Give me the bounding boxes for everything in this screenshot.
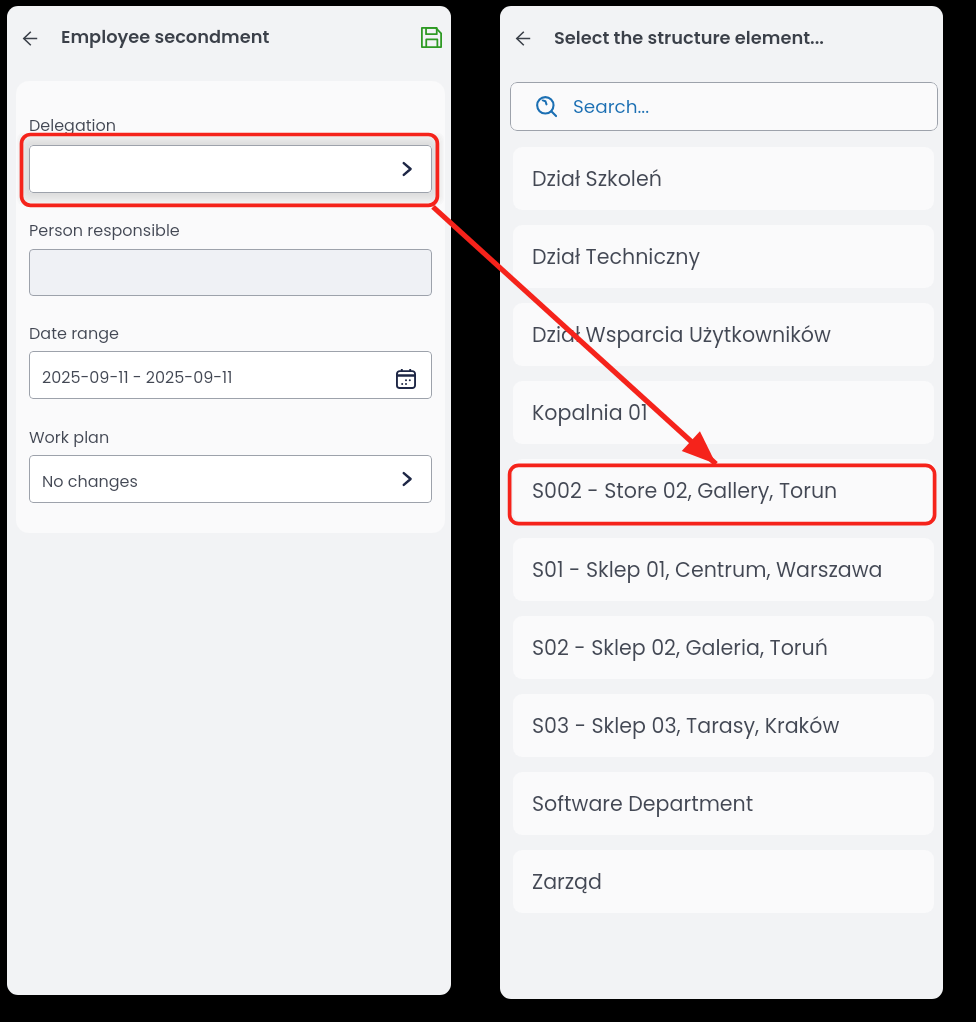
staticText: Kopalnia 01: [532, 398, 648, 427]
button[interactable]: 2025-09-11 - 2025-09-11: [29, 351, 432, 399]
staticText: Date range: [29, 322, 119, 344]
button[interactable]: S01 - Sklep 01, Centrum, Warszawa: [513, 538, 934, 601]
button[interactable]: Kopalnia 01: [513, 381, 934, 444]
button[interactable]: [29, 145, 432, 193]
button[interactable]: Dział Szkoleń: [513, 147, 934, 210]
staticText: Dział Wsparcia Użytkowników: [532, 320, 831, 349]
button[interactable]: No changes: [29, 455, 432, 503]
staticText: Person responsible: [29, 219, 180, 241]
staticText: Dział Szkoleń: [532, 164, 662, 193]
staticText: Software Department: [532, 789, 754, 818]
button[interactable]: Save: [411, 17, 451, 57]
staticText: Delegation: [29, 114, 116, 136]
button[interactable]: S03 - Sklep 03, Tarasy, Kraków: [513, 694, 934, 757]
button[interactable]: Zarząd: [513, 850, 934, 913]
button[interactable]: Back: [503, 18, 543, 58]
button[interactable]: Search...: [510, 82, 938, 131]
staticText: No changes: [42, 470, 138, 492]
staticText: 2025-09-11 - 2025-09-11: [42, 366, 233, 388]
staticText: Select the structure element...: [554, 25, 824, 50]
staticText: Dział Techniczny: [532, 242, 701, 271]
staticText: Work plan: [29, 426, 110, 448]
staticText: S01 - Sklep 01, Centrum, Warszawa: [532, 555, 883, 584]
staticText: Search...: [573, 94, 650, 120]
staticText: S02 - Sklep 02, Galeria, Toruń: [532, 633, 828, 662]
button[interactable]: Back: [10, 18, 50, 58]
button[interactable]: Dział Techniczny: [513, 225, 934, 288]
button[interactable]: Dział Wsparcia Użytkowników: [513, 303, 934, 366]
button[interactable]: S002 - Store 02, Gallery, Torun: [513, 459, 934, 522]
staticText: S002 - Store 02, Gallery, Torun: [532, 476, 838, 505]
staticText: Employee secondment: [61, 24, 270, 49]
button[interactable]: S02 - Sklep 02, Galeria, Toruń: [513, 616, 934, 679]
staticText: Zarząd: [532, 867, 602, 896]
staticText: S03 - Sklep 03, Tarasy, Kraków: [532, 711, 840, 740]
button[interactable]: Software Department: [513, 772, 934, 835]
